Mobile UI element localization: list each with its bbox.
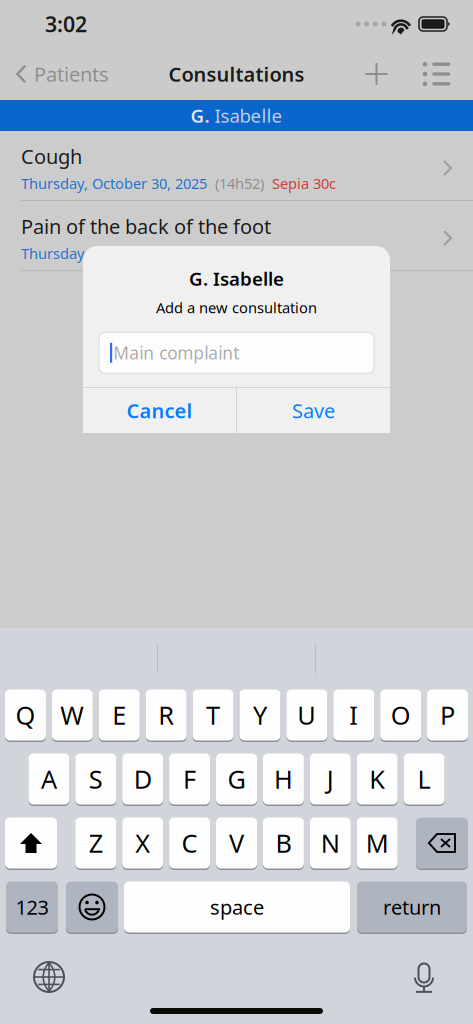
button[interactable]: Q bbox=[5, 689, 46, 741]
staticText: Add a new consultation bbox=[156, 298, 317, 317]
button[interactable]: G bbox=[216, 753, 257, 805]
staticText: P bbox=[440, 698, 455, 732]
staticText: J bbox=[327, 762, 334, 796]
button[interactable]: Patients bbox=[0, 48, 121, 100]
staticText: (14h52) bbox=[215, 174, 264, 193]
staticText: Isabelle bbox=[209, 103, 282, 128]
staticText: Cough bbox=[21, 143, 82, 170]
staticText: 3:02 bbox=[45, 10, 87, 38]
button[interactable]: space bbox=[124, 881, 350, 933]
staticText: Consultations bbox=[168, 61, 304, 87]
button[interactable]: M bbox=[357, 817, 398, 869]
button[interactable]: Z bbox=[75, 817, 116, 869]
staticText: Main complaint bbox=[113, 341, 239, 364]
staticText: Sepia 30c bbox=[272, 174, 336, 193]
button[interactable]: S bbox=[75, 753, 116, 805]
button[interactable]: C bbox=[169, 817, 210, 869]
staticText: (14h46) bbox=[215, 244, 264, 263]
button[interactable]: D bbox=[122, 753, 163, 805]
staticText: Pain of the back of the foot bbox=[21, 213, 271, 240]
staticText: G bbox=[227, 762, 245, 796]
button[interactable]: X bbox=[122, 817, 163, 869]
button[interactable]: Delete bbox=[416, 817, 468, 869]
staticText: Thursday, October 30, 2025 bbox=[21, 174, 207, 193]
button[interactable]: return bbox=[357, 881, 467, 933]
staticText: Q bbox=[15, 698, 35, 732]
button[interactable]: B bbox=[263, 817, 304, 869]
staticText: X bbox=[135, 826, 150, 860]
button[interactable]: Dictate bbox=[400, 953, 448, 993]
button[interactable]: A bbox=[28, 753, 69, 805]
staticText: R bbox=[158, 698, 174, 732]
staticText: F bbox=[183, 762, 196, 796]
button[interactable]: T bbox=[192, 689, 233, 741]
button[interactable]: Y bbox=[239, 689, 280, 741]
button[interactable]: F bbox=[169, 753, 210, 805]
staticText: W bbox=[60, 698, 84, 732]
staticText: N bbox=[321, 826, 340, 860]
staticText: space bbox=[210, 894, 264, 920]
button[interactable]: Save bbox=[237, 388, 390, 433]
staticText: Save bbox=[292, 397, 335, 424]
staticText: 123 bbox=[15, 894, 48, 920]
button[interactable]: W bbox=[52, 689, 93, 741]
staticText: Cancel bbox=[126, 397, 192, 424]
staticText: D bbox=[134, 762, 152, 796]
button[interactable]: N bbox=[310, 817, 351, 869]
staticText: G. bbox=[190, 103, 209, 128]
staticText: U bbox=[297, 698, 316, 732]
button[interactable]: U bbox=[286, 689, 327, 741]
staticText: L bbox=[418, 762, 431, 796]
staticText: Thursday, October 30, 2025 bbox=[21, 244, 207, 263]
staticText: T bbox=[206, 698, 220, 732]
button[interactable]: K bbox=[357, 753, 398, 805]
button[interactable]: List options bbox=[409, 48, 464, 100]
staticText: return bbox=[383, 894, 441, 920]
staticText: Patients bbox=[34, 61, 109, 87]
button[interactable]: Add consultation bbox=[344, 48, 409, 100]
button[interactable]: Emoji bbox=[66, 881, 118, 933]
staticText: S bbox=[89, 762, 103, 796]
button[interactable]: J bbox=[310, 753, 351, 805]
staticText: M bbox=[366, 826, 389, 860]
staticText: V bbox=[229, 826, 244, 860]
staticText: B bbox=[275, 826, 291, 860]
staticText: O bbox=[391, 698, 411, 732]
button[interactable]: I bbox=[333, 689, 374, 741]
button[interactable]: O bbox=[380, 689, 421, 741]
staticText: E bbox=[112, 698, 126, 732]
button[interactable]: E bbox=[99, 689, 140, 741]
button[interactable]: Pain of the back of the foot bbox=[0, 201, 473, 271]
button[interactable]: L bbox=[404, 753, 445, 805]
button[interactable]: Cancel bbox=[83, 388, 236, 433]
staticText: H bbox=[274, 762, 293, 796]
button[interactable]: R bbox=[146, 689, 187, 741]
staticText: A bbox=[41, 762, 57, 796]
staticText: K bbox=[369, 762, 385, 796]
staticText: I bbox=[349, 698, 358, 732]
button[interactable]: 123 bbox=[6, 881, 58, 933]
staticText: C bbox=[182, 826, 198, 860]
button[interactable]: Shift bbox=[5, 817, 57, 869]
button[interactable]: Next keyboard bbox=[25, 953, 73, 993]
staticText: Y bbox=[253, 698, 267, 732]
button[interactable]: P bbox=[427, 689, 468, 741]
staticText: G. Isabelle bbox=[189, 266, 284, 291]
staticText: Z bbox=[89, 826, 103, 860]
button[interactable]: H bbox=[263, 753, 304, 805]
button[interactable]: Cough bbox=[0, 131, 473, 201]
button[interactable]: V bbox=[216, 817, 257, 869]
staticText: Sepia 30c bbox=[272, 244, 336, 263]
